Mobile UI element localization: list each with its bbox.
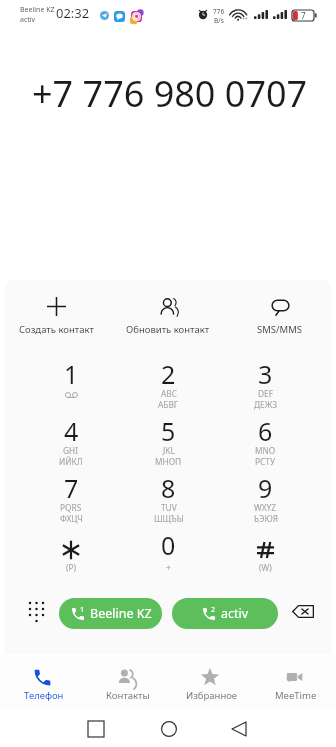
button[interactable]: Контакты	[84, 654, 168, 710]
button[interactable]: 7	[22, 475, 120, 532]
button[interactable]: Recent apps	[79, 712, 113, 746]
button[interactable]: Show dial pad	[23, 599, 49, 625]
staticText: 2	[211, 605, 216, 615]
staticText: activ	[221, 605, 249, 622]
staticText: 7	[301, 10, 306, 21]
staticText: ИЙКЛ	[59, 456, 83, 467]
staticText: ЬЭЮЯ	[254, 513, 278, 524]
staticText: +7 776 980 0707	[32, 69, 308, 118]
staticText: DEF	[258, 388, 273, 399]
staticText: MeeTime	[275, 689, 317, 702]
staticText: 1	[80, 605, 85, 615]
staticText: 4	[64, 414, 79, 448]
staticText: ДЕЖЗ	[254, 399, 277, 410]
button[interactable]: (W)	[217, 532, 314, 589]
staticText: MNO	[255, 445, 276, 456]
staticText: SMS/MMS	[257, 323, 303, 336]
button[interactable]: 3	[217, 361, 314, 418]
staticText: TUV	[161, 502, 177, 513]
button[interactable]: 1	[59, 598, 162, 629]
button[interactable]: 2	[172, 598, 278, 629]
button[interactable]: Home	[152, 712, 186, 746]
button[interactable]: SMS/MMS	[224, 293, 332, 340]
button[interactable]: Backspace	[289, 597, 317, 625]
staticText: +	[166, 562, 171, 573]
button[interactable]: Back	[222, 712, 256, 746]
staticText: PQRS	[60, 502, 82, 513]
staticText: 5	[161, 414, 176, 448]
staticText: GHI	[63, 445, 79, 456]
staticText: Создать контакт	[19, 323, 94, 336]
button[interactable]: MeeTime	[252, 654, 336, 710]
button[interactable]: Избранное	[168, 654, 252, 710]
staticText: РСТУ	[255, 456, 276, 467]
staticText: 7	[64, 471, 79, 505]
staticText: 6	[258, 414, 273, 448]
staticText: 0	[161, 528, 176, 562]
button[interactable]: 2	[120, 361, 217, 418]
staticText: B/s	[214, 16, 224, 25]
button[interactable]: (P)	[22, 532, 120, 589]
staticText: 3	[258, 357, 273, 391]
button[interactable]: 9	[217, 475, 314, 532]
staticText: 02:32	[56, 4, 90, 22]
staticText: ШЩЪЫ	[154, 513, 184, 524]
staticText: WXYZ	[254, 502, 277, 513]
staticText: activ	[20, 15, 36, 25]
staticText: Телефон	[24, 689, 64, 702]
button[interactable]: 4	[22, 418, 120, 475]
staticText: Контакты	[106, 689, 150, 702]
staticText: (P)	[66, 562, 76, 573]
button[interactable]: 8	[120, 475, 217, 532]
staticText: Избранное	[186, 689, 238, 702]
button[interactable]: 0	[120, 532, 217, 589]
staticText: ФХЦЧ	[60, 513, 83, 524]
staticText: МНОП	[155, 456, 182, 467]
button[interactable]: Обновить контакт	[112, 293, 224, 340]
staticText: 776	[213, 7, 225, 16]
staticText: 2	[161, 357, 176, 391]
button[interactable]: 6	[217, 418, 314, 475]
staticText: АБВГ	[158, 399, 179, 410]
staticText: Beeline KZ	[90, 605, 152, 622]
button[interactable]: 1	[22, 361, 120, 418]
staticText: 8	[161, 471, 176, 505]
staticText: Обновить контакт	[126, 323, 210, 336]
button[interactable]: 5	[120, 418, 217, 475]
button[interactable]: Телефон	[0, 654, 84, 710]
staticText: 9	[258, 471, 273, 505]
staticText: JKL	[163, 445, 175, 456]
staticText: ABC	[161, 388, 177, 399]
staticText: Beeline KZ	[20, 5, 55, 15]
staticText: (W)	[259, 562, 272, 573]
staticText: 1	[64, 357, 79, 391]
button[interactable]: Создать контакт	[4, 293, 112, 340]
